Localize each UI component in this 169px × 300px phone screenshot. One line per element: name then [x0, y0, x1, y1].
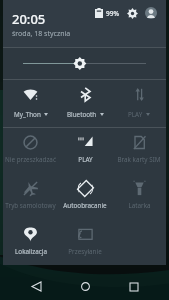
staticText: My_Thon	[14, 110, 41, 119]
button[interactable]: Back	[19, 273, 53, 300]
button[interactable]: Settings	[125, 6, 139, 20]
button[interactable]: Tryb samolotowy	[3, 174, 58, 220]
button[interactable]: Latarka	[112, 174, 166, 220]
button[interactable]: Autoobracanie	[58, 174, 112, 220]
staticText: Brak karty SIM	[117, 155, 161, 164]
staticText: Nie przeszkadzać	[5, 155, 56, 164]
button[interactable]: User profile	[144, 6, 158, 20]
staticText: Autoobracanie	[63, 201, 107, 210]
button[interactable]: PLAY	[58, 128, 112, 174]
button[interactable]: Lokalizacja	[3, 220, 58, 264]
button[interactable]: My_Thon	[3, 80, 58, 127]
staticText: PLAY	[128, 110, 143, 119]
button[interactable]: Bluetooth	[58, 80, 112, 127]
button[interactable]: Nie przeszkadzać	[3, 128, 58, 174]
staticText: 99%	[106, 9, 119, 18]
staticText: Lokalizacja	[15, 247, 47, 256]
button[interactable]: Brak karty SIM	[112, 128, 166, 174]
staticText: środa, 18 stycznia	[12, 29, 71, 39]
staticText: 20:05	[12, 10, 46, 28]
button[interactable]: Home	[68, 273, 102, 300]
button[interactable]: Przesyłanie	[58, 220, 112, 264]
button[interactable]	[3, 48, 166, 79]
staticText: Przesyłanie	[68, 247, 102, 256]
button[interactable]: Recent apps	[117, 273, 151, 300]
button[interactable]: 20:05	[12, 10, 71, 39]
staticText: Tryb samolotowy	[5, 201, 56, 210]
staticText: Latarka	[128, 201, 151, 210]
staticText: Bluetooth	[67, 110, 97, 119]
staticText: PLAY	[78, 155, 93, 164]
button[interactable]: PLAY	[112, 80, 166, 127]
